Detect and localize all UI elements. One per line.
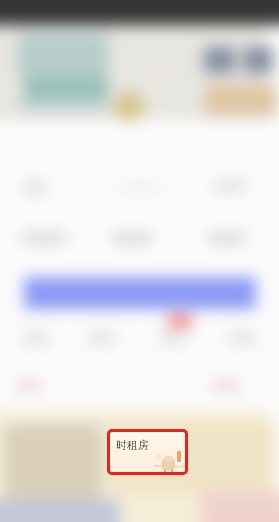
button[interactable]: 时租房 (110, 432, 185, 472)
staticText: 时租房 (116, 438, 149, 452)
